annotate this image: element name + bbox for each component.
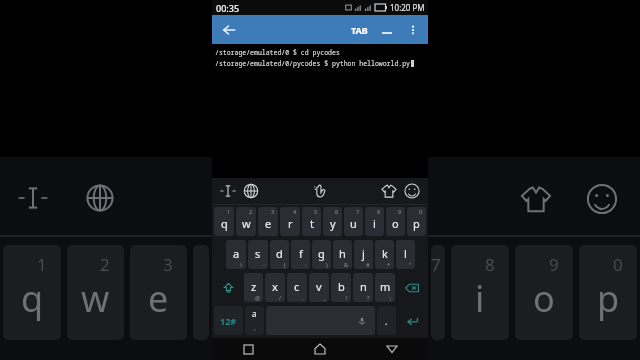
staticText: q (21, 274, 44, 323)
button[interactable]: Handwriting (312, 183, 328, 199)
button[interactable]: Back (217, 18, 241, 42)
staticText: 8 (377, 208, 381, 215)
staticText: i (373, 216, 376, 231)
staticText: g (318, 246, 325, 261)
staticText: 9 (398, 208, 402, 215)
button[interactable]: g (312, 240, 331, 269)
button[interactable]: Recents (212, 338, 284, 360)
staticText: 0 (613, 253, 623, 276)
staticText: ( (284, 261, 286, 268)
button[interactable]: 6 (323, 207, 342, 236)
button[interactable]: j (354, 240, 373, 269)
button[interactable]: Themes (381, 183, 397, 199)
button[interactable]: Shift (214, 273, 242, 302)
staticText: * (387, 261, 391, 268)
button[interactable]: a (245, 306, 264, 335)
button[interactable]: . (377, 306, 396, 335)
staticText: 3 (271, 208, 275, 215)
button[interactable]: v (309, 273, 329, 302)
staticText: : (305, 261, 307, 268)
staticText: /storage/emulated/0/pycodes $ python hel… (215, 59, 411, 68)
staticText: _ (323, 294, 326, 301)
staticText: a (252, 308, 257, 319)
button[interactable]: Emoji (404, 183, 420, 199)
button[interactable]: m (375, 273, 395, 302)
staticText: & (344, 261, 349, 268)
staticText: p (597, 274, 620, 323)
button[interactable]: n (353, 273, 373, 302)
staticText: 4 (293, 208, 297, 215)
staticText: z (251, 279, 257, 294)
button[interactable]: 7 (344, 207, 363, 236)
staticText: e (265, 216, 272, 231)
button[interactable]: Backspace (397, 273, 426, 302)
staticText: \ (240, 261, 243, 268)
button[interactable]: Minimize (374, 17, 400, 43)
staticText: 6 (335, 208, 339, 215)
staticText: / (279, 294, 282, 301)
button[interactable]: 1 (214, 207, 234, 236)
staticText: p (413, 216, 420, 231)
button[interactable]: h (333, 240, 352, 269)
staticText: c (294, 279, 300, 294)
button[interactable]: b (331, 273, 351, 302)
staticText: o (533, 274, 555, 323)
button[interactable]: c (287, 273, 307, 302)
button[interactable]: s (248, 240, 268, 269)
button[interactable]: Back (356, 338, 428, 360)
button[interactable]: x (265, 273, 285, 302)
staticText: 12# (220, 315, 237, 327)
staticText: q (221, 216, 228, 231)
button[interactable]: 12# (214, 306, 243, 335)
staticText: 2 (100, 253, 110, 276)
button[interactable]: l (396, 240, 415, 269)
staticText: w (81, 274, 110, 323)
staticText: r (288, 216, 293, 231)
staticText: ! (346, 294, 348, 301)
button[interactable]: Home (284, 338, 356, 360)
button[interactable]: 8 (365, 207, 384, 236)
staticText: 00:35 (216, 2, 240, 14)
staticText: - (263, 261, 265, 268)
staticText: # (366, 261, 370, 268)
button[interactable]: f (291, 240, 310, 269)
staticText: k (382, 246, 388, 261)
staticText: s (255, 246, 261, 261)
staticText: m (380, 279, 391, 294)
staticText: . (302, 294, 304, 301)
staticText: n (360, 279, 367, 294)
staticText: 1 (37, 253, 47, 276)
button[interactable]: 4 (280, 207, 300, 236)
button[interactable]: Space (266, 306, 375, 335)
button[interactable]: z (244, 273, 263, 302)
staticText: . (385, 315, 388, 327)
staticText: u (350, 216, 357, 231)
staticText: w (242, 216, 251, 231)
button[interactable]: More options (400, 17, 426, 43)
button[interactable]: 9 (386, 207, 405, 236)
staticText: ) (326, 261, 328, 268)
button[interactable]: Text cursor (220, 183, 236, 199)
button[interactable]: k (375, 240, 394, 269)
button[interactable]: Change language (243, 183, 259, 199)
button[interactable]: 2 (236, 207, 256, 236)
staticText: i (475, 274, 485, 323)
staticText: f (299, 246, 303, 261)
staticText: 3 (163, 253, 173, 276)
staticText: h (339, 246, 346, 261)
button[interactable]: 3 (258, 207, 278, 236)
staticText: 8 (485, 253, 495, 276)
button[interactable]: Enter (398, 306, 426, 335)
staticText: v (316, 279, 322, 294)
button[interactable]: a (226, 240, 246, 269)
button[interactable]: d (270, 240, 289, 269)
staticText: " (409, 261, 412, 268)
staticText: l (404, 246, 407, 261)
button[interactable]: TAB (345, 15, 374, 44)
staticText: @ (255, 294, 260, 301)
staticText: b (338, 279, 345, 294)
staticText: ? (367, 294, 370, 301)
staticText: 9 (549, 253, 559, 276)
button[interactable]: 5 (302, 207, 321, 236)
button[interactable]: 0 (407, 207, 426, 236)
